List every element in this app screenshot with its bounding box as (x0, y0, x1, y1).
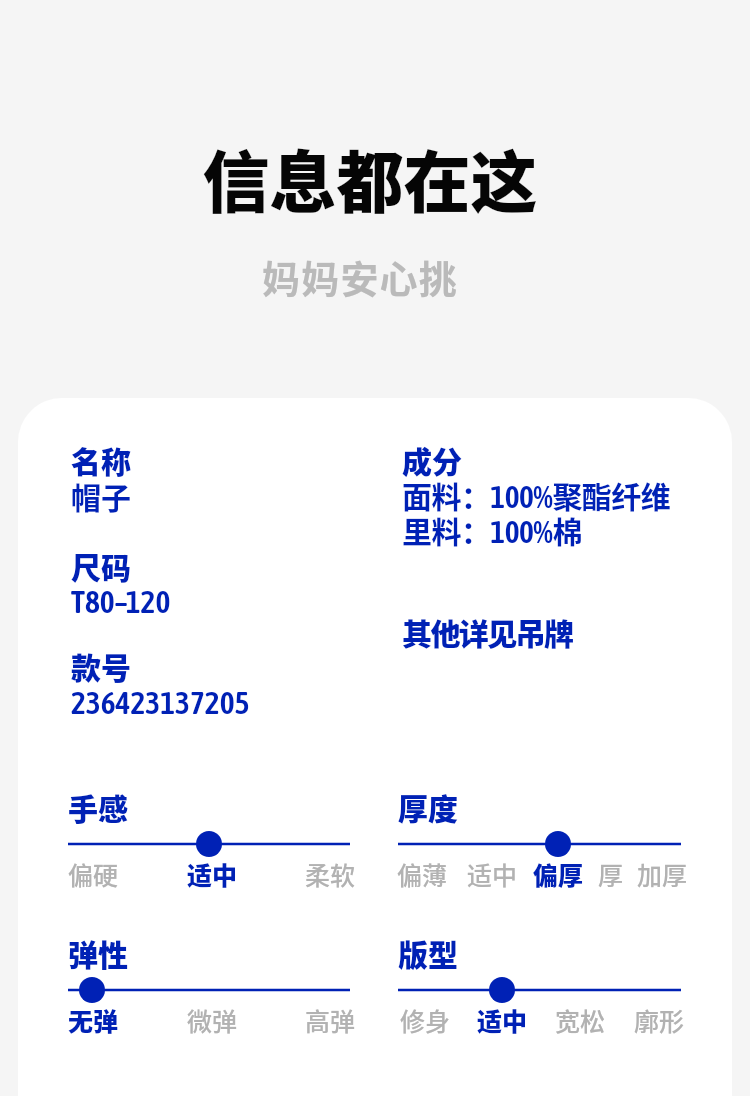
staticText: 面料：100%聚酯纤维 (402, 473, 671, 516)
staticText: 里料：100%棉 (402, 508, 582, 551)
button[interactable]: 廓形 (630, 1001, 686, 1037)
staticText: 帽子 (71, 474, 131, 517)
staticText: 柔软 (305, 856, 356, 892)
button[interactable]: 适中 (473, 1001, 529, 1037)
button[interactable]: 适中 (463, 855, 519, 891)
button[interactable]: 偏薄 (393, 855, 449, 891)
staticText: 236423137205 (71, 684, 250, 720)
staticText: 加厚 (637, 856, 688, 892)
staticText: T80–120 (71, 583, 171, 619)
button[interactable]: 厚 (594, 855, 626, 891)
button[interactable]: 修身 (396, 1001, 452, 1037)
button[interactable]: 宽松 (551, 1001, 607, 1037)
button[interactable]: 高弹 (301, 1001, 357, 1037)
button[interactable]: 厚度: 偏厚 (398, 830, 681, 858)
button[interactable]: 版型: 适中 (398, 976, 681, 1004)
staticText: 厚 (598, 856, 624, 892)
staticText: 弹性 (68, 931, 128, 974)
staticText: 版型 (398, 931, 458, 974)
button[interactable]: 偏硬 (64, 855, 120, 891)
staticText: 适中 (467, 856, 518, 892)
button[interactable]: 手感: 适中 (68, 830, 350, 858)
staticText: 宽松 (555, 1002, 606, 1038)
staticText: 尺码 (71, 544, 131, 587)
staticText: 成分 (402, 438, 462, 481)
staticText: 高弹 (305, 1002, 356, 1038)
staticText: 妈妈安心挑 (0, 249, 735, 304)
staticText: 廓形 (634, 1002, 685, 1038)
button[interactable]: 柔软 (301, 855, 357, 891)
staticText: 信息都在这 (0, 129, 745, 226)
staticText: 厚度 (398, 785, 458, 828)
staticText: 偏硬 (68, 856, 119, 892)
staticText: 无弹 (68, 1002, 119, 1038)
button[interactable]: 偏厚 (529, 855, 585, 891)
button[interactable]: 加厚 (633, 855, 689, 891)
button[interactable]: 适中 (183, 855, 239, 891)
staticText: 手感 (68, 785, 128, 828)
button[interactable]: 弹性: 无弹 (68, 976, 350, 1004)
staticText: 适中 (187, 856, 238, 892)
staticText: 名称 (71, 438, 131, 481)
staticText: 微弹 (187, 1002, 238, 1038)
staticText: 修身 (400, 1002, 451, 1038)
staticText: 偏厚 (533, 856, 584, 892)
button[interactable]: 微弹 (183, 1001, 239, 1037)
staticText: 适中 (477, 1002, 528, 1038)
staticText: 款号 (71, 644, 131, 687)
staticText: 其他详见吊牌 (402, 610, 573, 653)
staticText: 偏薄 (397, 856, 448, 892)
button[interactable]: 无弹 (64, 1001, 120, 1037)
